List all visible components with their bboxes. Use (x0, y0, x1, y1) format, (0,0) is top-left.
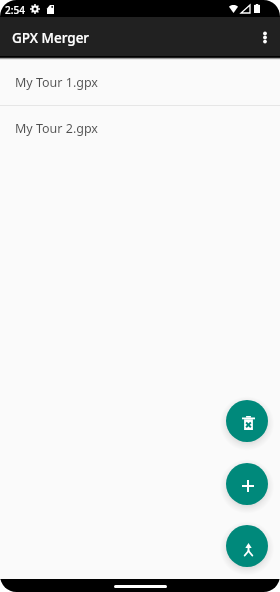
button[interactable]: Delete all (226, 400, 268, 442)
staticText: 2:54 (5, 3, 25, 17)
button[interactable]: More options (246, 20, 280, 54)
button[interactable]: Add (226, 463, 268, 505)
staticText: GPX Merger (12, 29, 90, 47)
staticText: My Tour 2.gpx (15, 120, 98, 137)
button[interactable]: Merge (226, 525, 268, 567)
button[interactable]: My Tour 1.gpx (0, 60, 280, 105)
staticText: My Tour 1.gpx (15, 74, 98, 91)
button[interactable]: My Tour 2.gpx (0, 106, 280, 151)
